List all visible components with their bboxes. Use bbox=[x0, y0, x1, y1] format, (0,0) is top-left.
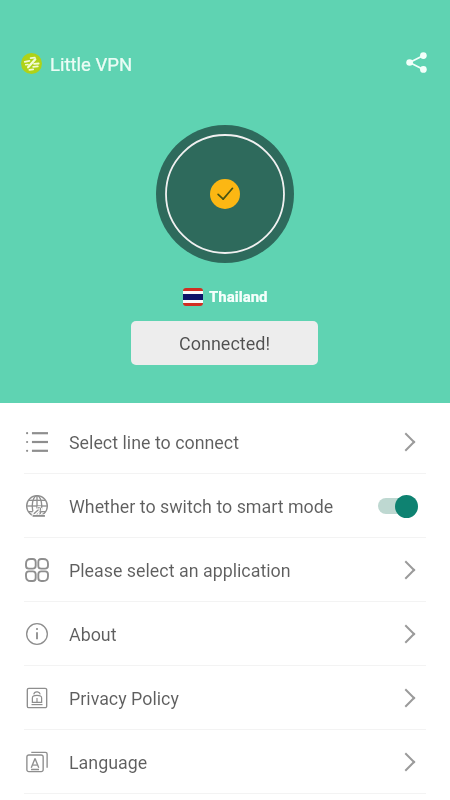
staticText: Whether to switch to smart mode bbox=[69, 496, 334, 517]
staticText: Select line to connect bbox=[69, 432, 240, 453]
button[interactable]: Smart mode toggle bbox=[378, 493, 420, 519]
staticText: About bbox=[69, 624, 117, 645]
staticText: Little VPN bbox=[50, 54, 133, 76]
button[interactable]: Privacy Policy bbox=[0, 666, 450, 730]
button[interactable]: Please select an application bbox=[0, 538, 450, 602]
staticText: Privacy Policy bbox=[69, 688, 179, 709]
button[interactable]: Language bbox=[0, 730, 450, 794]
staticText: Language bbox=[69, 752, 148, 773]
button[interactable]: Select line to connect bbox=[0, 410, 450, 474]
button[interactable]: Connected! bbox=[131, 321, 318, 365]
button[interactable]: Connection status bbox=[156, 125, 294, 263]
staticText: Connected! bbox=[179, 333, 271, 354]
staticText: Thailand bbox=[209, 288, 268, 306]
button[interactable]: Whether to switch to smart mode bbox=[0, 474, 450, 538]
staticText: Please select an application bbox=[69, 560, 291, 581]
button[interactable]: Share bbox=[396, 42, 436, 82]
button[interactable]: About bbox=[0, 602, 450, 666]
